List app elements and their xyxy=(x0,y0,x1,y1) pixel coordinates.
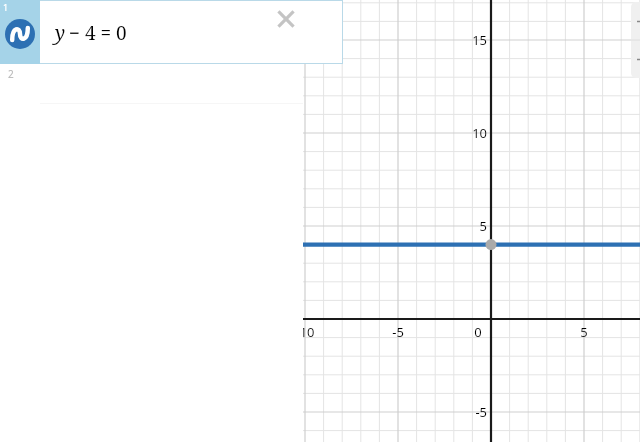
button[interactable]: Zoom out xyxy=(631,41,640,78)
staticText: -10 xyxy=(285,323,325,341)
staticText: -5 xyxy=(465,403,487,421)
staticText: 10 xyxy=(465,124,487,142)
staticText: − 4 = 0 xyxy=(69,20,127,46)
staticText: 15 xyxy=(465,31,487,49)
staticText: 5 xyxy=(564,323,604,341)
staticText: y xyxy=(55,20,66,46)
staticText: -5 xyxy=(378,323,418,341)
staticText: 5 xyxy=(474,217,487,235)
staticText: 2 xyxy=(8,67,14,81)
button[interactable]: Zoom in xyxy=(631,2,640,40)
staticText: 0 xyxy=(458,323,498,341)
button[interactable]: Delete expression xyxy=(272,5,300,33)
staticText: 1 xyxy=(3,1,9,13)
button[interactable]: 1 xyxy=(0,0,303,64)
button[interactable]: Toggle graph visibility xyxy=(5,19,35,49)
